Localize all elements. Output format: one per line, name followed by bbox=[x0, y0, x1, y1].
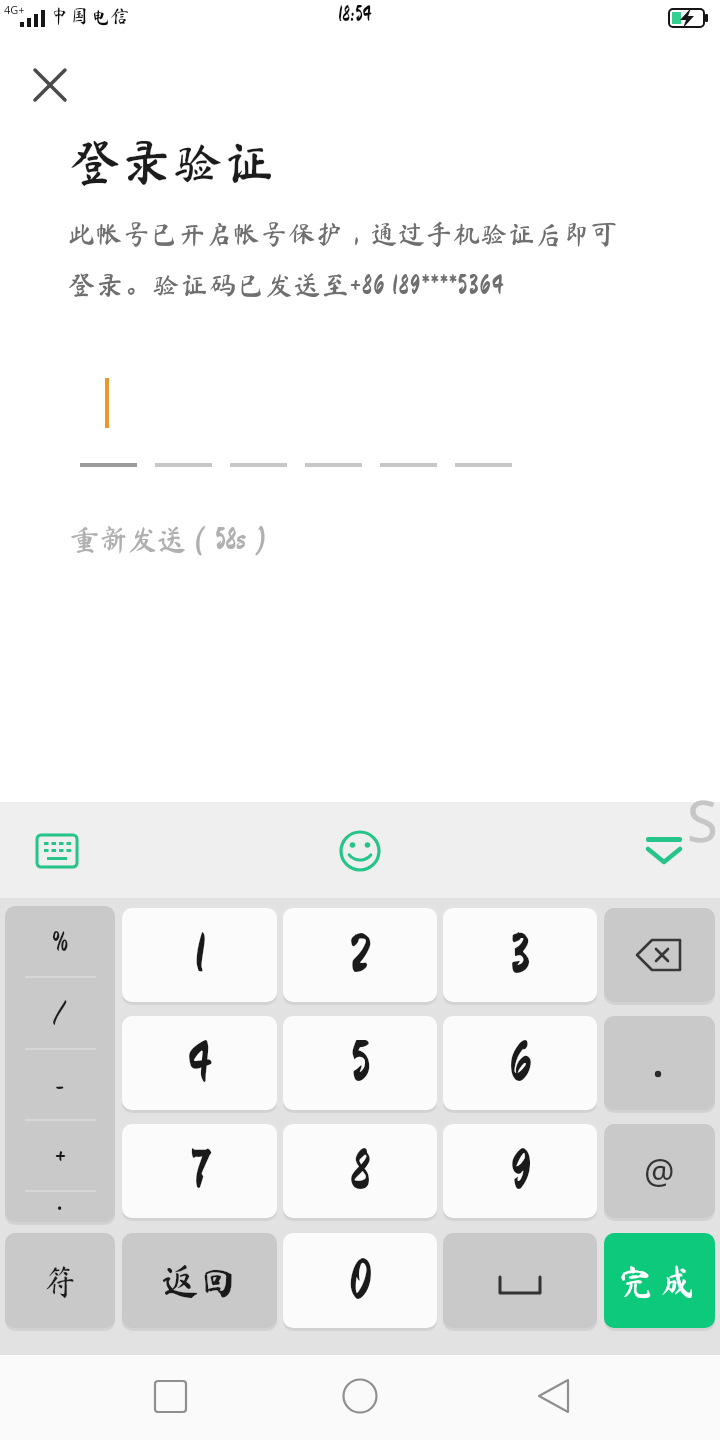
button[interactable] bbox=[604, 908, 715, 1002]
button[interactable] bbox=[130, 1360, 210, 1435]
staticText: · bbox=[56, 1189, 64, 1226]
staticText: @ bbox=[644, 1148, 675, 1194]
staticText: 中国电信 bbox=[50, 6, 131, 25]
button[interactable] bbox=[22, 58, 78, 114]
staticText: - bbox=[55, 1071, 65, 1098]
button[interactable]: 完成 bbox=[604, 1233, 715, 1328]
staticText: 1 bbox=[194, 927, 206, 983]
button[interactable]: 符 bbox=[5, 1233, 115, 1328]
staticText: 4G+ bbox=[4, 2, 25, 17]
button[interactable] bbox=[5, 906, 115, 1222]
staticText: 完成 bbox=[618, 1263, 701, 1299]
staticText: 返回 bbox=[161, 1262, 238, 1300]
button[interactable]: 返回 bbox=[122, 1233, 277, 1328]
staticText: 9 bbox=[510, 1143, 531, 1199]
staticText: 6 bbox=[509, 1035, 532, 1091]
staticText: 登录验证 bbox=[70, 137, 276, 187]
button[interactable]: 1 bbox=[122, 908, 277, 1002]
staticText: 4 bbox=[187, 1035, 212, 1091]
button[interactable]: 0 bbox=[283, 1233, 437, 1328]
staticText: S bbox=[687, 782, 718, 858]
button[interactable] bbox=[330, 822, 390, 878]
button[interactable]: 3 bbox=[443, 908, 597, 1002]
button[interactable]: 8 bbox=[283, 1124, 437, 1218]
button[interactable]: 4 bbox=[122, 1016, 277, 1110]
button[interactable]: 9 bbox=[443, 1124, 597, 1218]
button[interactable] bbox=[515, 1360, 595, 1435]
staticText: 7 bbox=[190, 1143, 210, 1199]
button[interactable] bbox=[634, 822, 694, 878]
staticText: + bbox=[55, 1142, 66, 1169]
staticText: / bbox=[53, 999, 67, 1026]
button[interactable]: @ bbox=[604, 1124, 715, 1218]
staticText: 符 bbox=[43, 1264, 77, 1298]
staticText: 2 bbox=[349, 927, 371, 983]
button[interactable] bbox=[443, 1233, 597, 1328]
staticText: 重新发送（58s） bbox=[70, 524, 275, 553]
staticText: 3 bbox=[510, 927, 531, 983]
button[interactable] bbox=[320, 1360, 400, 1435]
staticText: 5 bbox=[350, 1035, 371, 1091]
staticText: 此帐号已开启帐号保护，通过手机验证后即可 bbox=[68, 220, 618, 247]
button[interactable] bbox=[604, 1016, 715, 1110]
staticText: % bbox=[52, 928, 69, 955]
staticText: 0 bbox=[349, 1253, 372, 1309]
staticText: 8 bbox=[350, 1143, 371, 1199]
button[interactable] bbox=[24, 822, 90, 878]
staticText: 登录。验证码已发送至+86 189****5364 bbox=[68, 271, 505, 298]
button[interactable]: 6 bbox=[443, 1016, 597, 1110]
button[interactable]: 7 bbox=[122, 1124, 277, 1218]
button[interactable]: 2 bbox=[283, 908, 437, 1002]
button[interactable]: 5 bbox=[283, 1016, 437, 1110]
staticText: 18:54 bbox=[338, 4, 372, 25]
